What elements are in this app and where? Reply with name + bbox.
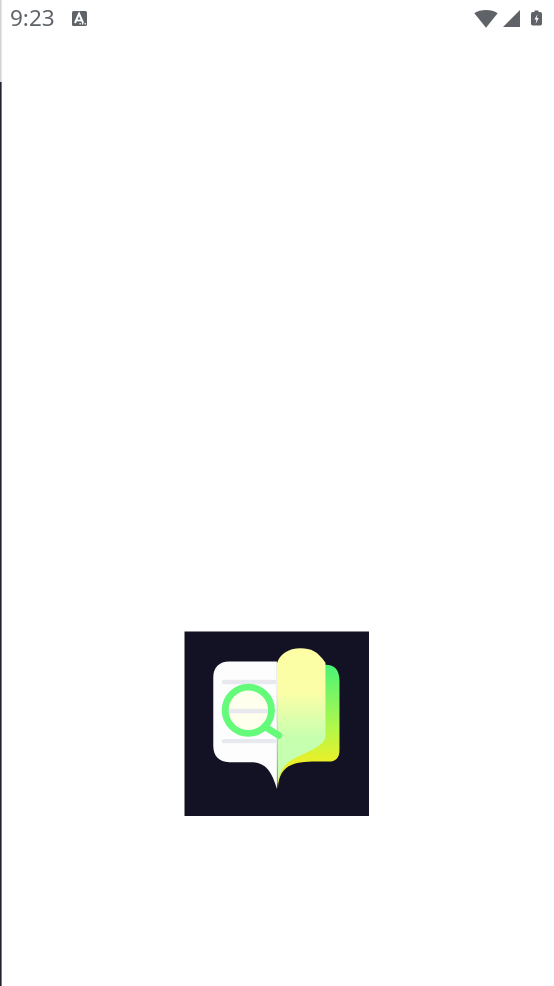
- other: App logo: [184, 631, 370, 817]
- staticText: 9:23: [10, 2, 55, 33]
